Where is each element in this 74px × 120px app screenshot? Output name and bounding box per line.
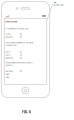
staticText: Website #1 [5,57,13,59]
staticText: Transmission of Activities / Data [5,28,29,30]
staticText: Age 41 [5,51,10,53]
staticText: Listing Items [54,4,64,6]
staticText: All Activities [5,70,13,72]
staticText: Privacy Setting [5,21,17,23]
staticText: Activities / Data [5,44,17,46]
staticText: Apps/Websites Allowed to Transmit My [5,42,33,44]
staticText: Caller 2 [5,76,10,78]
staticText: Entities Allowed to Receive Activities /… [5,62,33,64]
staticText: B. UNCHECK [5,36,13,38]
staticText: and Data [5,64,12,66]
staticText: Age 47 [5,54,10,56]
staticText: Edit [54,1,57,3]
staticText: Caller 1 [5,73,10,75]
staticText: FIG. 8 [22,110,31,114]
staticText: A. CHECK [5,33,11,35]
